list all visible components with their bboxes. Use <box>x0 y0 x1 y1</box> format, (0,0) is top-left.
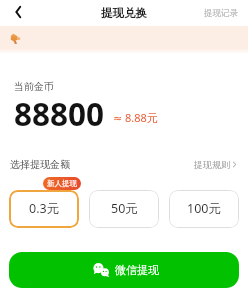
staticText: 提现规则 <box>194 159 230 170</box>
button[interactable]: Back <box>6 1 30 25</box>
staticText: ≈ 8.88元 <box>113 110 158 125</box>
staticText: 选择提现金额 <box>10 158 70 171</box>
button[interactable]: 0.3元 <box>9 190 79 228</box>
button[interactable]: 100元 <box>169 190 239 228</box>
staticText: 50元 <box>111 200 138 217</box>
button[interactable]: 提现规则 <box>194 159 238 170</box>
staticText: 当前金币 <box>14 80 54 93</box>
staticText: 提现兑换 <box>101 6 147 20</box>
button[interactable]: 提现记录 <box>194 4 248 23</box>
staticText: 微信提现 <box>115 263 159 277</box>
button[interactable]: 微信提现 <box>9 252 239 288</box>
staticText: 提现记录 <box>204 8 238 19</box>
staticText: 88800 <box>14 92 105 135</box>
button[interactable]: 50元 <box>89 190 159 228</box>
staticText: 100元 <box>187 200 221 217</box>
staticText: 新人提现 <box>47 179 77 188</box>
staticText: 0.3元 <box>29 200 60 217</box>
